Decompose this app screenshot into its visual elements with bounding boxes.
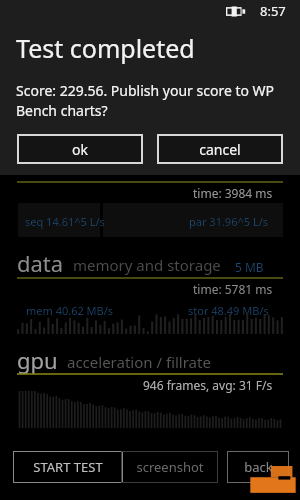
staticText: screenshot <box>136 458 204 476</box>
staticText: 8:57 <box>260 2 286 20</box>
staticText: ok <box>72 140 88 159</box>
button[interactable]: cancel <box>157 134 283 164</box>
button[interactable]: START TEST <box>13 451 123 483</box>
staticText: back <box>244 458 273 476</box>
staticText: acceleration / fillrate <box>67 352 211 372</box>
staticText: seq 14.61^5 L/s <box>25 214 105 229</box>
button[interactable] <box>103 203 283 237</box>
staticText: stor 48.49 MB/s <box>188 303 269 318</box>
staticText: Score: 229.56. Publish your score to WP … <box>16 81 275 120</box>
staticText: memory and storage <box>73 255 221 275</box>
button[interactable]: screenshot <box>121 451 218 483</box>
staticText: data <box>17 248 64 278</box>
staticText: mem 40.62 MB/s <box>26 303 114 318</box>
button[interactable]: ok <box>17 134 143 164</box>
staticText: Test completed <box>16 31 195 65</box>
other: Battery charging <box>226 6 246 17</box>
staticText: time: 5781 ms <box>193 281 273 297</box>
staticText: START TEST <box>33 458 103 476</box>
staticText: par 31.96^5 L/s <box>189 214 269 229</box>
button[interactable]: back <box>227 451 289 483</box>
staticText: 5 MB <box>235 259 264 275</box>
staticText: time: 3984 ms <box>193 185 273 201</box>
staticText: 946 frames, avg: 31 F/s <box>143 377 273 393</box>
button[interactable] <box>18 203 100 237</box>
staticText: gpu <box>17 345 58 375</box>
staticText: cancel <box>199 140 241 159</box>
